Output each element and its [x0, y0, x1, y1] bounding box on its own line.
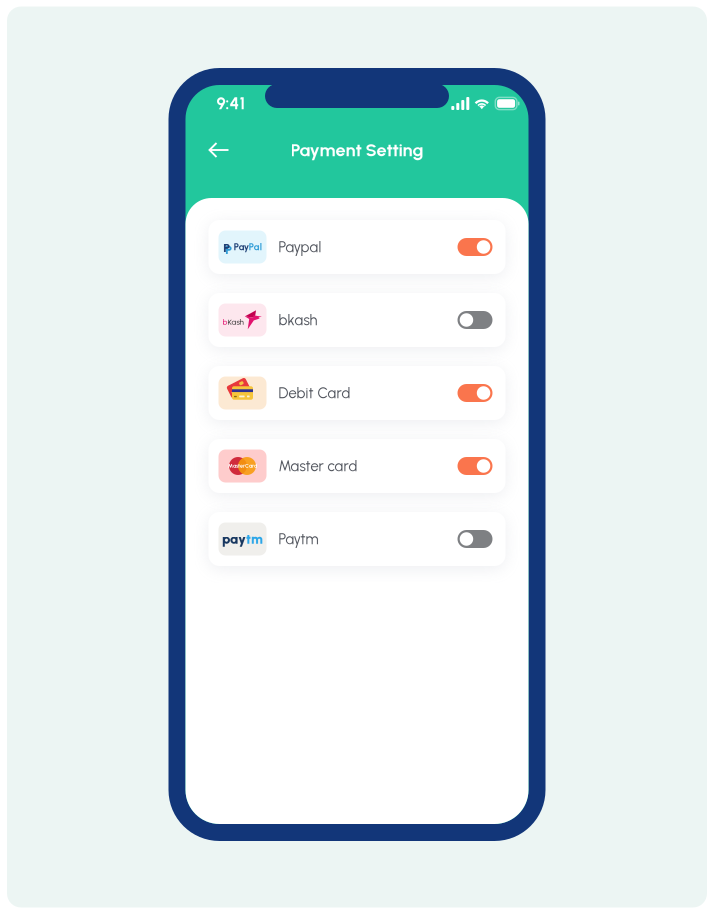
button[interactable]: b: [208, 293, 505, 347]
button[interactable]: pay: [208, 512, 505, 566]
button[interactable]: Back: [197, 130, 240, 170]
staticText: P: [223, 240, 230, 255]
staticText: Payment Setting: [290, 139, 423, 161]
staticText: Pal: [249, 241, 262, 253]
staticText: bkash: [278, 311, 317, 329]
staticText: Pay: [234, 241, 249, 253]
button[interactable]: P: [208, 220, 505, 274]
staticText: Paytm: [278, 530, 318, 548]
staticText: Debit Card: [278, 384, 350, 402]
staticText: 9:41: [216, 93, 245, 113]
staticText: P: [225, 242, 232, 257]
staticText: tm: [246, 531, 263, 547]
staticText: Kash: [227, 317, 243, 327]
button[interactable]: MasterCard: [208, 439, 505, 493]
staticText: b: [222, 317, 227, 327]
button[interactable]: Debit Card: [208, 366, 505, 420]
staticText: Paypal: [278, 238, 321, 256]
staticText: pay: [222, 531, 246, 547]
staticText: MasterCard: [228, 463, 257, 469]
staticText: Master card: [278, 457, 357, 475]
